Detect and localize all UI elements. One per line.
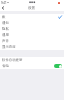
staticText: 设置 [28,6,36,11]
staticText: ●●● [29,1,36,4]
staticText: •• [7,1,10,5]
button[interactable]: 通用 [0,32,64,38]
button[interactable]: 省电 [0,63,64,69]
button[interactable]: 显示亮度 [0,44,64,50]
staticText: 显示亮度 [2,45,16,49]
staticText: 通用 [2,33,9,37]
staticText: 9:41 [1,1,7,5]
button[interactable]: 隐私 [0,26,64,32]
staticText: 软件自动更新 [2,58,23,62]
button[interactable]: Back [0,5,6,11]
button[interactable]: 通知 [0,20,64,26]
button[interactable]: 声音 [0,38,64,44]
staticText: 省电 [2,64,9,68]
staticText: 通知 [2,21,9,25]
staticText: 声音 [2,39,9,43]
staticText: 隐私 [2,27,9,31]
button[interactable]: 账 [0,14,64,20]
button[interactable]: 软件自动更新 [0,57,64,63]
staticText: 账 [2,15,6,19]
